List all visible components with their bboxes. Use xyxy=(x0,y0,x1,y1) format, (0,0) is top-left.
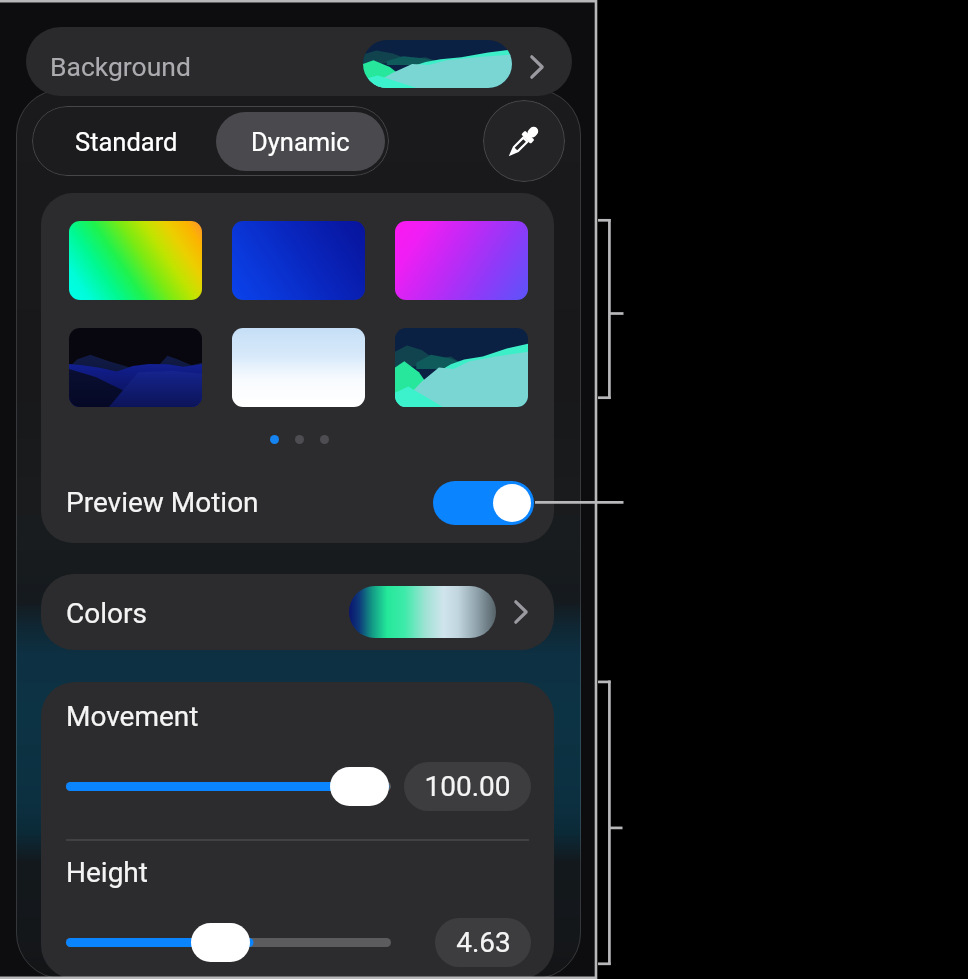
button[interactable]: Preview Motion, on xyxy=(433,481,534,525)
staticText: Background xyxy=(50,51,191,82)
button[interactable]: Night ridge wallpaper xyxy=(69,328,202,407)
button[interactable]: Spectrum wallpaper xyxy=(69,221,202,300)
button[interactable]: Dynamic xyxy=(216,112,385,171)
staticText: 100.00 xyxy=(424,770,511,803)
staticText: Standard xyxy=(75,127,178,157)
button[interactable]: 4.63 xyxy=(435,918,531,967)
button[interactable]: Daylight wallpaper xyxy=(232,328,365,407)
staticText: Preview Motion xyxy=(66,486,259,519)
button[interactable]: Standard xyxy=(36,112,216,171)
button[interactable]: Go to wallpaper page 1 xyxy=(270,435,279,444)
staticText: Movement xyxy=(66,700,199,733)
button[interactable]: Background xyxy=(26,27,572,96)
button[interactable]: Aurora hills wallpaper xyxy=(395,328,528,407)
button[interactable]: Slider handle xyxy=(330,767,389,806)
button[interactable]: 100.00 xyxy=(404,762,531,811)
button[interactable]: Magenta wallpaper xyxy=(395,221,528,300)
button[interactable]: Go to wallpaper page 2 xyxy=(295,435,304,444)
button[interactable]: Go to wallpaper page 3 xyxy=(320,435,329,444)
staticText: Colors xyxy=(66,597,147,630)
button[interactable]: Slider handle xyxy=(191,923,250,962)
button[interactable]: Colors xyxy=(41,574,554,650)
staticText: Height xyxy=(66,856,148,889)
button[interactable]: Deep blue wallpaper xyxy=(232,221,365,300)
staticText: Dynamic xyxy=(251,127,350,157)
staticText: 4.63 xyxy=(456,926,511,959)
button[interactable]: Pick colour with eyedropper xyxy=(483,100,565,182)
